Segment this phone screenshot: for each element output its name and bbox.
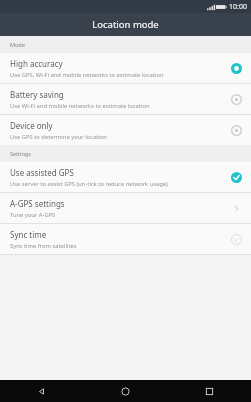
staticText: Use Wi-Fi and mobile networks to estimat… xyxy=(10,102,150,110)
staticText: Tune your A-GPS xyxy=(10,211,56,219)
other: Not selected xyxy=(229,123,243,137)
staticText: Device only xyxy=(10,120,53,131)
staticText: 10:00 xyxy=(229,2,247,12)
staticText: Sync time from satellites xyxy=(10,242,77,250)
staticText: Battery saving xyxy=(10,89,64,100)
staticText: Use server to assist GPS (un-tick to red… xyxy=(10,180,168,188)
button[interactable]: A-GPS settings xyxy=(0,193,251,223)
staticText: Location mode xyxy=(92,18,159,31)
button[interactable]: Back xyxy=(0,380,83,402)
button[interactable]: Recent apps xyxy=(167,380,251,402)
staticText: Use GPS to determine your location xyxy=(10,133,107,141)
button[interactable]: Home xyxy=(83,380,167,402)
button[interactable]: Sync time xyxy=(0,224,251,254)
button[interactable]: Battery saving xyxy=(0,84,251,114)
other: Open A-GPS settings xyxy=(229,201,243,215)
staticText: Use GPS, Wi-Fi and mobile networks to es… xyxy=(10,71,164,79)
other: Unchecked xyxy=(229,232,243,246)
other: Not selected xyxy=(229,92,243,106)
staticText: Settings xyxy=(10,150,31,157)
other: Checked xyxy=(229,170,243,184)
other: Selected xyxy=(229,61,243,75)
staticText: Sync time xyxy=(10,229,47,240)
button[interactable]: Device only xyxy=(0,115,251,145)
staticText: A-GPS settings xyxy=(10,198,65,209)
staticText: High accuracy xyxy=(10,58,63,69)
button[interactable]: High accuracy xyxy=(0,53,251,83)
staticText: Mode xyxy=(10,41,25,48)
staticText: Use assisted GPS xyxy=(10,167,74,178)
button[interactable]: Use assisted GPS xyxy=(0,162,251,192)
